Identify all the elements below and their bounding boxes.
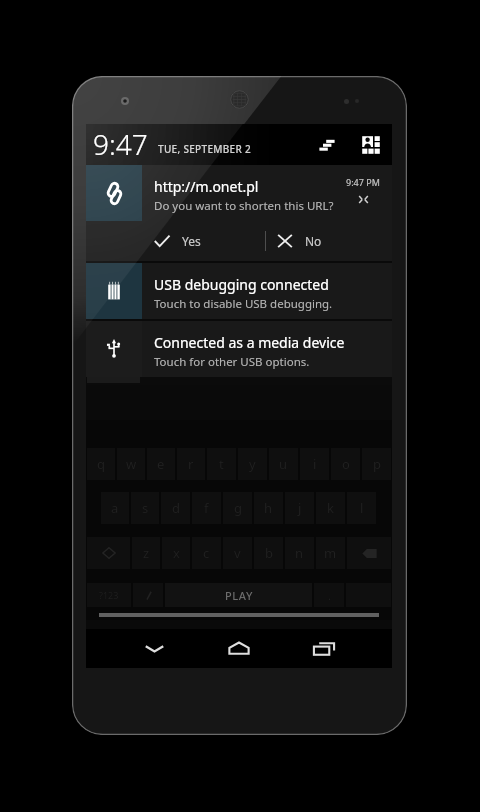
button[interactable]: Back xyxy=(112,629,196,668)
button[interactable]: Shift xyxy=(87,537,130,569)
button[interactable]: http://m.onet.pl xyxy=(86,165,392,221)
staticText: c xyxy=(203,544,210,562)
button[interactable]: Quick settings xyxy=(357,131,385,159)
button[interactable]: Home xyxy=(196,629,281,668)
button[interactable]: Notification settings xyxy=(313,131,341,159)
button[interactable]: Recent apps xyxy=(281,629,366,668)
staticText: d xyxy=(172,499,180,517)
staticText: s xyxy=(142,499,149,517)
staticText: 9:47 PM xyxy=(346,176,380,188)
staticText: q xyxy=(97,455,105,473)
staticText: m xyxy=(324,544,337,562)
staticText: r xyxy=(188,455,194,473)
staticText: v xyxy=(234,544,241,562)
staticText: a xyxy=(111,499,119,517)
staticText: y xyxy=(249,455,256,473)
staticText: Touch to disable USB debugging. xyxy=(154,296,333,312)
staticText: e xyxy=(157,455,165,473)
staticText: TUE, SEPTEMBER 2 xyxy=(158,142,251,156)
staticText: z xyxy=(143,544,150,562)
staticText: o xyxy=(342,455,350,473)
staticText: n xyxy=(295,544,304,562)
staticText: h xyxy=(264,499,273,517)
button[interactable]: No xyxy=(265,221,388,261)
staticText: http://m.onet.pl xyxy=(154,177,259,196)
staticText: Yes xyxy=(182,233,201,249)
staticText: x xyxy=(173,544,180,562)
staticText: u xyxy=(279,455,288,473)
staticText: Do you want to shorten this URL? xyxy=(154,198,334,214)
staticText: Touch for other USB options. xyxy=(154,354,310,370)
button[interactable]: USB debugging connected xyxy=(86,263,392,319)
staticText: w xyxy=(126,455,137,473)
staticText: g xyxy=(234,499,242,517)
staticText: p xyxy=(373,455,381,473)
staticText: f xyxy=(204,499,209,517)
staticText: j xyxy=(298,499,302,517)
staticText: Connected as a media device xyxy=(154,333,345,352)
staticText: 9:47 xyxy=(93,125,148,163)
staticText: ?123 xyxy=(99,589,119,601)
staticText: PLAY xyxy=(225,588,253,603)
staticText: t xyxy=(219,455,224,473)
button[interactable]: Connected as a media device xyxy=(86,321,392,377)
staticText: No xyxy=(305,233,322,249)
staticText: i xyxy=(313,455,317,473)
staticText: k xyxy=(327,499,334,517)
staticText: l xyxy=(360,499,364,517)
staticText: b xyxy=(265,544,273,562)
staticText: USB debugging connected xyxy=(154,275,329,294)
button[interactable]: Space xyxy=(165,583,312,607)
button[interactable]: Backspace xyxy=(347,537,391,569)
button[interactable]: Yes xyxy=(142,221,265,261)
